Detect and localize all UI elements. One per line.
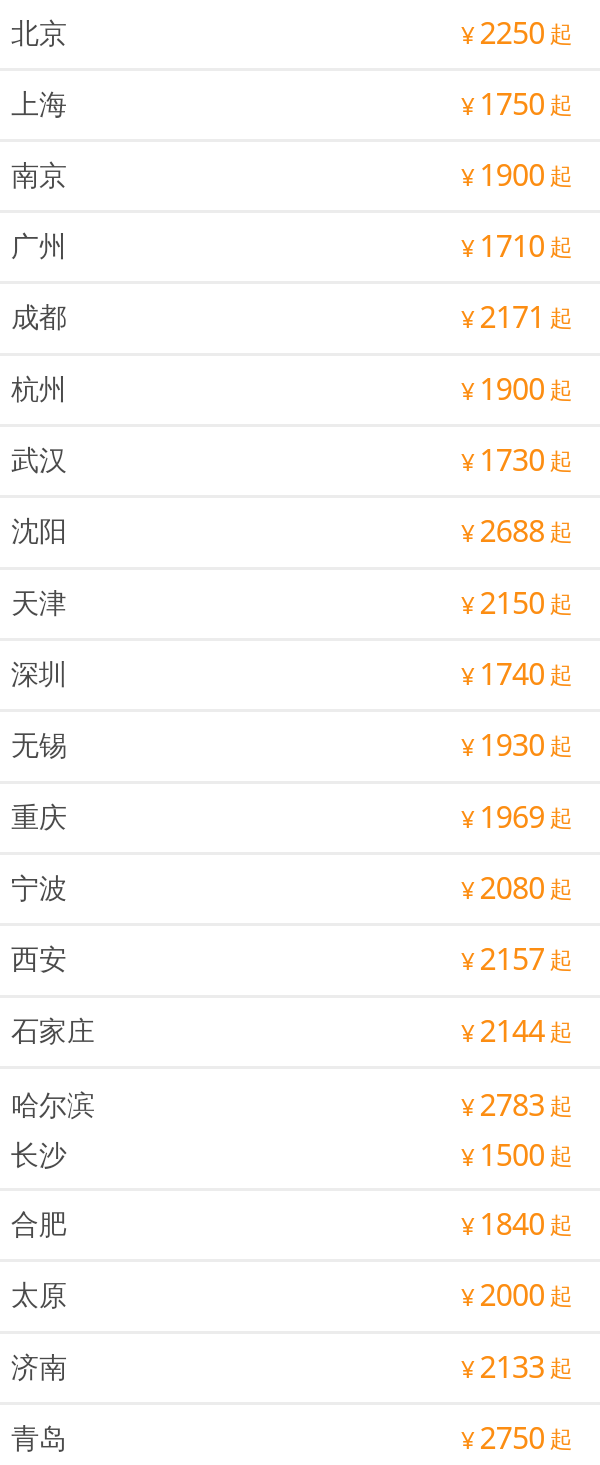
staticText: 重庆 bbox=[11, 800, 67, 835]
button[interactable]: 北京 bbox=[0, 0, 600, 68]
staticText: ¥ 1730 起 bbox=[461, 439, 573, 480]
staticText: ¥ 2157 起 bbox=[461, 938, 573, 979]
staticText: ¥ 2080 起 bbox=[461, 867, 573, 908]
staticText: ¥ 1740 起 bbox=[461, 653, 573, 694]
staticText: 北京 bbox=[11, 16, 67, 51]
staticText: ¥ 2000 起 bbox=[461, 1274, 573, 1315]
staticText: ¥ 2133 起 bbox=[461, 1346, 573, 1387]
staticText: 广州 bbox=[11, 229, 67, 264]
button[interactable]: 重庆 bbox=[0, 784, 600, 852]
button[interactable]: 上海 bbox=[0, 71, 600, 139]
button[interactable]: 石家庄 bbox=[0, 998, 600, 1066]
staticText: ¥ 1710 起 bbox=[461, 225, 573, 266]
button[interactable]: 杭州 bbox=[0, 356, 600, 424]
staticText: ¥ 1930 起 bbox=[461, 724, 573, 765]
staticText: ¥ 1840 起 bbox=[461, 1203, 573, 1244]
staticText: 武汉 bbox=[11, 443, 67, 478]
button[interactable]: 沈阳 bbox=[0, 498, 600, 567]
button[interactable]: 长沙 bbox=[0, 1131, 600, 1181]
staticText: 成都 bbox=[11, 300, 67, 335]
button[interactable]: 天津 bbox=[0, 570, 600, 638]
button[interactable]: 哈尔滨 bbox=[0, 1081, 600, 1131]
staticText: 深圳 bbox=[11, 657, 67, 692]
staticText: ¥ 1969 起 bbox=[461, 796, 573, 837]
staticText: 济南 bbox=[11, 1350, 67, 1385]
staticText: 宁波 bbox=[11, 871, 67, 906]
button[interactable]: 西安 bbox=[0, 926, 600, 995]
button[interactable]: 广州 bbox=[0, 213, 600, 281]
button[interactable]: 青岛 bbox=[0, 1401, 600, 1465]
staticText: 南京 bbox=[11, 158, 67, 193]
staticText: 上海 bbox=[11, 87, 67, 122]
button[interactable]: 济南 bbox=[0, 1334, 600, 1402]
button[interactable]: 无锡 bbox=[0, 712, 600, 781]
staticText: ¥ 1900 起 bbox=[461, 154, 573, 195]
staticText: ¥ 2171 起 bbox=[461, 296, 573, 337]
button[interactable]: 深圳 bbox=[0, 641, 600, 709]
staticText: ¥ 1750 起 bbox=[461, 83, 573, 124]
staticText: ¥ 2783 起 bbox=[461, 1084, 573, 1125]
staticText: ¥ 2250 起 bbox=[461, 12, 573, 53]
staticText: 杭州 bbox=[11, 372, 67, 407]
button[interactable]: 南京 bbox=[0, 142, 600, 210]
staticText: ¥ 1900 起 bbox=[461, 368, 573, 409]
staticText: ¥ 2144 起 bbox=[461, 1010, 573, 1051]
staticText: 太原 bbox=[11, 1278, 67, 1313]
staticText: ¥ 2750 起 bbox=[461, 1417, 573, 1458]
staticText: 长沙 bbox=[11, 1138, 67, 1173]
button[interactable]: 合肥 bbox=[0, 1191, 600, 1259]
staticText: ¥ 1500 起 bbox=[461, 1134, 573, 1175]
staticText: 西安 bbox=[11, 942, 67, 977]
staticText: 合肥 bbox=[11, 1207, 67, 1242]
staticText: 无锡 bbox=[11, 728, 67, 763]
staticText: 哈尔滨 bbox=[11, 1088, 95, 1123]
button[interactable]: 太原 bbox=[0, 1262, 600, 1331]
staticText: 沈阳 bbox=[11, 514, 67, 549]
staticText: 石家庄 bbox=[11, 1014, 95, 1049]
button[interactable]: 宁波 bbox=[0, 855, 600, 923]
button[interactable]: 武汉 bbox=[0, 427, 600, 495]
staticText: 天津 bbox=[11, 586, 67, 621]
staticText: ¥ 2150 起 bbox=[461, 582, 573, 623]
staticText: 青岛 bbox=[11, 1421, 67, 1456]
button[interactable]: 成都 bbox=[0, 284, 600, 353]
staticText: ¥ 2688 起 bbox=[461, 510, 573, 551]
